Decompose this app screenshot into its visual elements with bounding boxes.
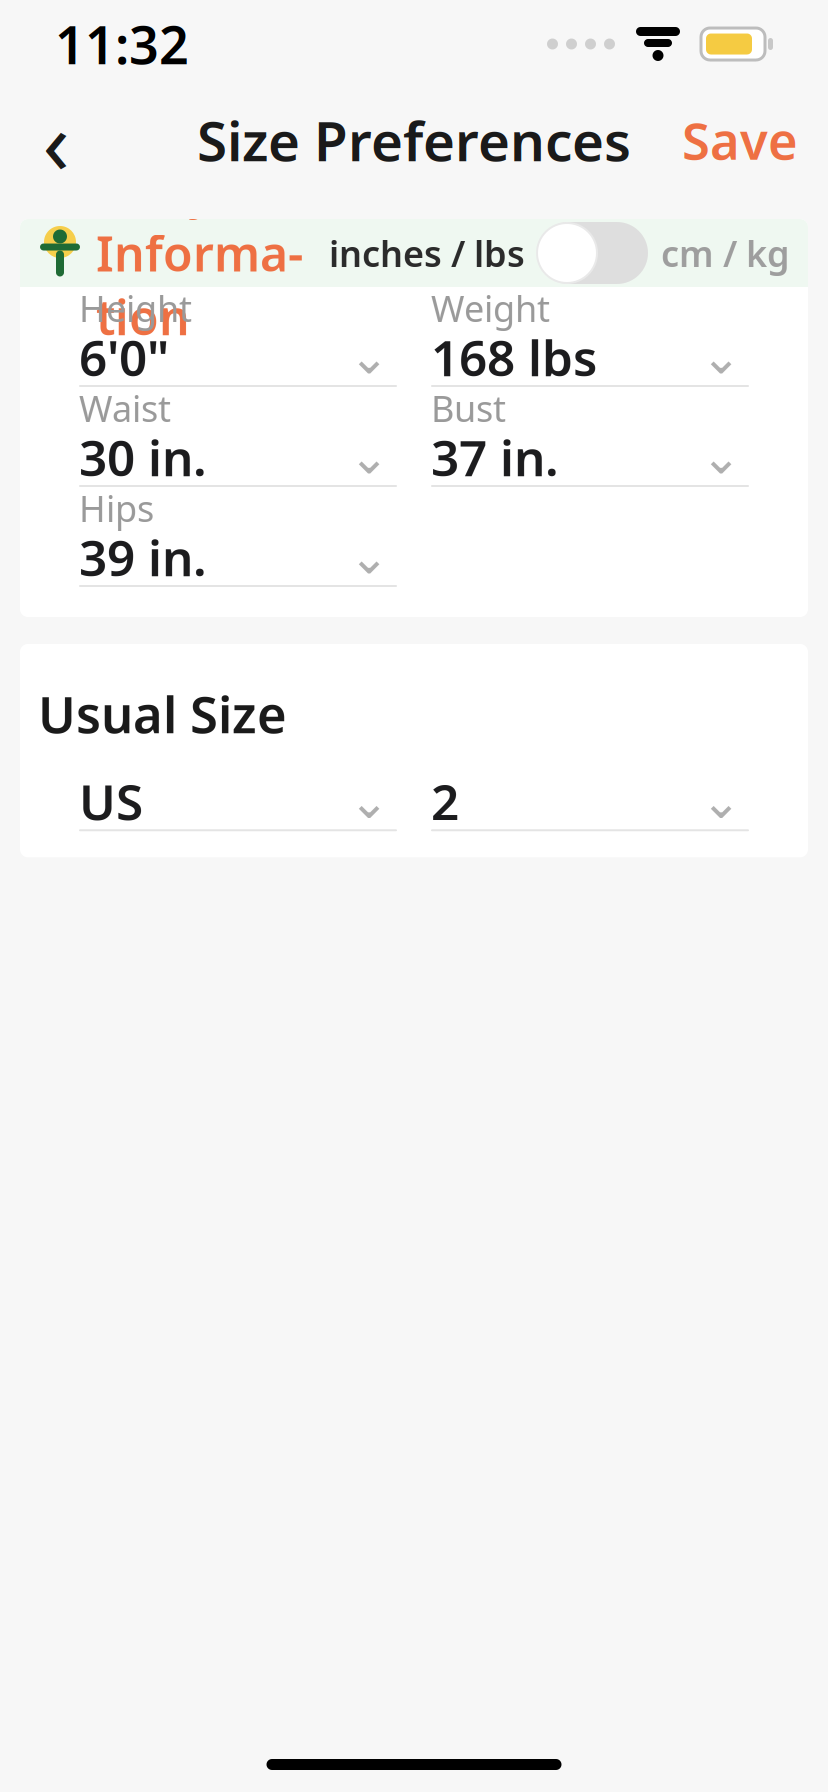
- staticText: 2: [431, 768, 459, 834]
- staticText: Size Preferences: [197, 104, 631, 176]
- staticText: Save: [682, 106, 798, 174]
- staticText: ‹: [42, 82, 69, 198]
- staticText: ⌄: [701, 430, 741, 484]
- staticText: US: [79, 768, 143, 834]
- staticText: Usual Size: [38, 680, 287, 747]
- staticText: ⌄: [349, 430, 389, 484]
- staticText: 6'0": [79, 324, 169, 390]
- button[interactable]: US: [79, 773, 397, 831]
- button[interactable]: Hips: [79, 487, 397, 587]
- staticText: Body Information: [96, 157, 303, 349]
- button[interactable]: Switch between inches and centimetres: [537, 222, 649, 284]
- staticText: ⌄: [701, 330, 741, 384]
- staticText: Height: [79, 284, 192, 332]
- staticText: inches / lbs: [329, 229, 525, 277]
- button[interactable]: Height: [79, 287, 397, 387]
- staticText: cm / kg: [661, 229, 790, 277]
- staticText: Waist: [79, 384, 171, 432]
- button[interactable]: Waist: [79, 387, 397, 487]
- staticText: ⌄: [349, 530, 389, 584]
- staticText: 168 lbs: [431, 324, 597, 390]
- staticText: 39 in.: [79, 524, 207, 590]
- button[interactable]: Back: [14, 95, 98, 185]
- staticText: 37 in.: [431, 424, 559, 490]
- button[interactable]: Weight: [431, 287, 749, 387]
- staticText: Hips: [79, 484, 154, 532]
- button[interactable]: 2: [431, 773, 749, 831]
- button[interactable]: Bust: [431, 387, 749, 487]
- button[interactable]: Save: [666, 95, 814, 185]
- staticText: ⌄: [349, 774, 389, 828]
- staticText: Bust: [431, 384, 506, 432]
- staticText: 30 in.: [79, 424, 207, 490]
- staticText: ⌄: [349, 330, 389, 384]
- staticText: 11:32: [55, 9, 189, 79]
- staticText: ⌄: [701, 774, 741, 828]
- staticText: Weight: [431, 284, 550, 332]
